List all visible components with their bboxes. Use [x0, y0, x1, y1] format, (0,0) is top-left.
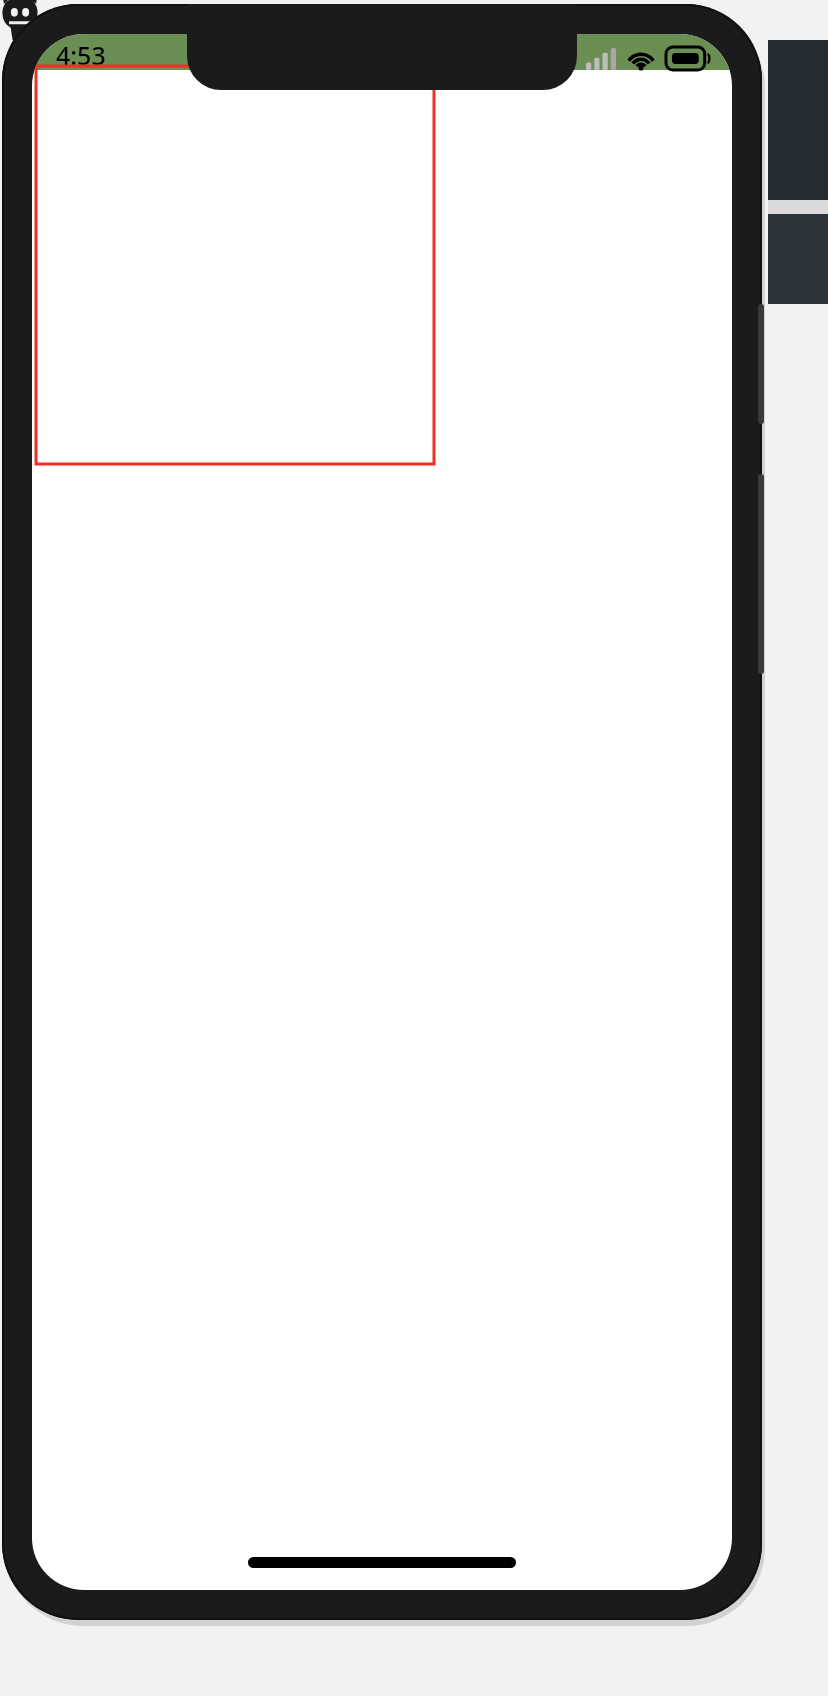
other: Wi-Fi [626, 49, 656, 71]
other: Cellular signal [586, 48, 616, 70]
button[interactable] [36, 66, 434, 464]
other: GitHub [0, 0, 42, 34]
staticText: 4:53 [56, 38, 106, 72]
other: Battery [666, 47, 710, 70]
